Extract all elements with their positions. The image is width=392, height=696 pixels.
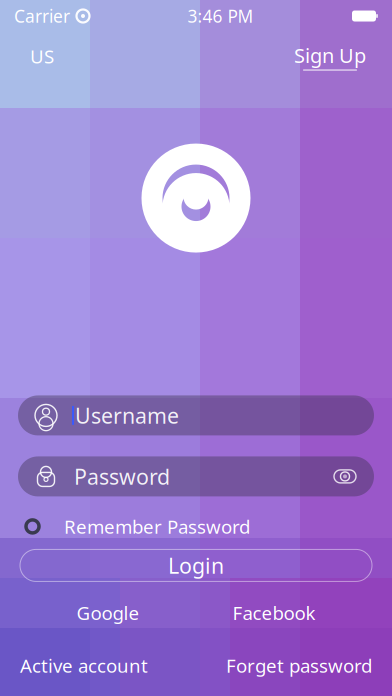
staticText: Carrier [14,4,70,27]
staticText: Password [74,462,170,491]
staticText: 3:46 PM [187,4,253,27]
staticText: Google [76,600,139,625]
staticText: Forget password [226,653,372,678]
button[interactable]: Google [66,596,149,629]
button[interactable]: Login [20,549,372,581]
staticText: Sign Up [294,42,366,69]
staticText: Username [75,401,179,430]
staticText: Facebook [232,600,315,625]
button[interactable]: Remember Password [0,513,392,539]
button[interactable]: Active account [16,649,152,682]
button[interactable]: Sign Up [290,38,370,75]
staticText: US [30,44,54,69]
button[interactable]: Forget password [222,649,376,682]
button[interactable]: Facebook [222,596,325,629]
button[interactable]: US [22,40,62,73]
staticText: Active account [20,653,148,678]
staticText: Remember Password [64,514,250,539]
staticText: Login [168,551,224,580]
